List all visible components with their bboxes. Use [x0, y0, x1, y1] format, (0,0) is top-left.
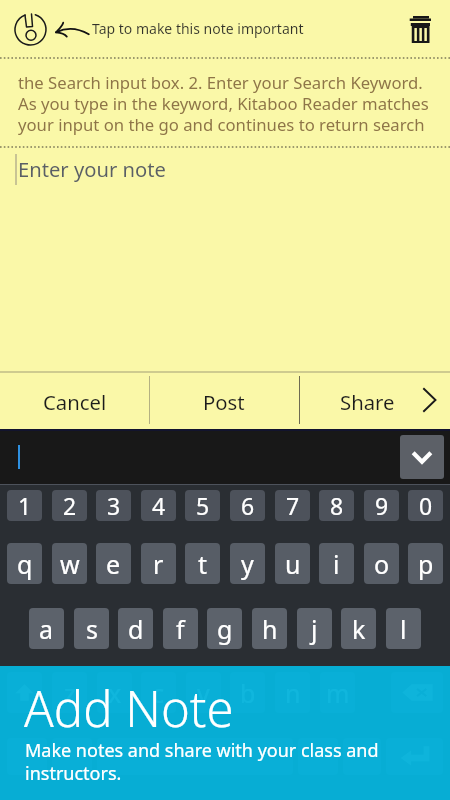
staticText: e	[106, 547, 121, 581]
staticText: 0	[419, 490, 433, 521]
button[interactable]: 8	[319, 490, 354, 521]
button[interactable]: h	[252, 608, 287, 649]
button[interactable]: a	[29, 608, 64, 649]
staticText: g	[217, 612, 233, 646]
button[interactable]: 2	[52, 490, 87, 521]
button[interactable]: v	[186, 672, 221, 713]
button[interactable]: Mark this note important	[8, 7, 53, 52]
button[interactable]: Emoji	[343, 738, 381, 775]
staticText: the Search input box. 2. Enter your Sear…	[18, 71, 429, 136]
staticText: 5	[196, 490, 210, 521]
button[interactable]: f	[163, 608, 198, 649]
button[interactable]: s	[74, 608, 109, 649]
button[interactable]: Delete note	[394, 1, 450, 57]
button[interactable]: k	[341, 608, 376, 649]
staticText: t	[198, 547, 208, 581]
staticText: Tap to make this note important	[92, 19, 304, 38]
button[interactable]: g	[207, 608, 242, 649]
button[interactable]: 1	[7, 490, 42, 521]
staticText: 4	[152, 490, 166, 521]
staticText: u	[285, 547, 301, 581]
button[interactable]: Comma	[52, 738, 92, 775]
staticText: j	[311, 612, 318, 646]
staticText: x	[108, 676, 122, 710]
button[interactable]: y	[230, 543, 265, 584]
staticText: 6	[241, 490, 255, 521]
button[interactable]: i	[319, 543, 354, 584]
button[interactable]: j	[297, 608, 332, 649]
button[interactable]: Symbols	[7, 738, 47, 775]
staticText: i	[333, 547, 340, 581]
staticText: Cancel	[43, 388, 107, 416]
button[interactable]: o	[364, 543, 399, 584]
button[interactable]: c	[141, 672, 176, 713]
staticText: 3	[107, 490, 121, 521]
staticText: l	[400, 612, 407, 646]
staticText: v	[197, 676, 210, 710]
button[interactable]: Period	[298, 738, 338, 775]
staticText: r	[153, 547, 164, 581]
staticText: Post	[203, 388, 245, 416]
staticText: q	[17, 547, 33, 581]
button[interactable]: Shift	[7, 672, 42, 713]
staticText: Add Note	[24, 675, 234, 742]
button[interactable]: r	[141, 543, 176, 584]
staticText: k	[352, 612, 366, 646]
button[interactable]: d	[118, 608, 153, 649]
button[interactable]: p	[408, 543, 443, 584]
staticText: f	[176, 612, 185, 646]
button[interactable]: Post	[149, 374, 299, 429]
staticText: Share	[340, 388, 395, 416]
button[interactable]: Share	[299, 374, 450, 429]
button[interactable]: l	[386, 608, 421, 649]
button[interactable]: z	[52, 672, 87, 713]
button[interactable]: b	[230, 672, 265, 713]
staticText: 2	[63, 490, 77, 521]
staticText: c	[152, 676, 165, 710]
staticText: 9	[375, 490, 389, 521]
button[interactable]: 3	[96, 490, 131, 521]
staticText: Enter your note	[18, 155, 166, 183]
staticText: z	[64, 676, 76, 710]
button[interactable]: Space	[97, 738, 293, 775]
staticText: p	[418, 547, 434, 581]
button[interactable]: 9	[364, 490, 399, 521]
staticText: 7	[286, 490, 300, 521]
staticText: d	[128, 612, 144, 646]
staticText: a	[39, 612, 54, 646]
button[interactable]: Hide keyboard	[400, 435, 444, 479]
button[interactable]: u	[275, 543, 310, 584]
button[interactable]: w	[52, 543, 87, 584]
button[interactable]: Cancel	[0, 374, 149, 429]
staticText: o	[374, 547, 390, 581]
staticText: w	[60, 547, 80, 581]
button[interactable]: e	[96, 543, 131, 584]
button[interactable]: t	[185, 543, 220, 584]
staticText: h	[262, 612, 278, 646]
button[interactable]: q	[7, 543, 42, 584]
staticText: Make notes and share with your class and…	[25, 738, 379, 785]
button[interactable]: 0	[408, 490, 443, 521]
staticText: 8	[330, 490, 344, 521]
button[interactable]: 6	[230, 490, 265, 521]
button[interactable]: 4	[141, 490, 176, 521]
staticText: s	[86, 612, 98, 646]
button[interactable]: 7	[275, 490, 310, 521]
staticText: y	[241, 547, 254, 581]
button[interactable]: 5	[185, 490, 220, 521]
button[interactable]: x	[97, 672, 132, 713]
staticText: 1	[18, 490, 32, 521]
